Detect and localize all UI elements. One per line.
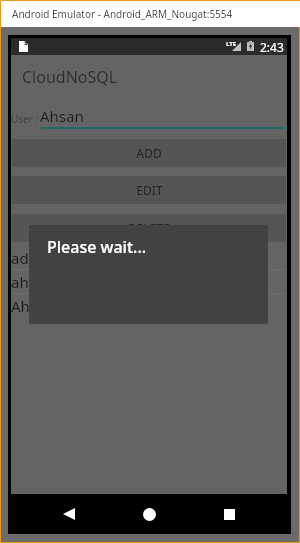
button[interactable]: EDIT — [12, 176, 286, 204]
button[interactable]: adam — [11, 246, 287, 269]
staticText: Please wait... — [47, 236, 147, 258]
staticText: DELETE — [128, 220, 170, 236]
button[interactable]: Back — [47, 494, 91, 534]
button[interactable]: DELETE — [12, 214, 286, 242]
button[interactable]: Recent apps — [207, 494, 251, 534]
button[interactable]: Home — [127, 494, 171, 534]
staticText: adam — [11, 248, 52, 268]
staticText: Ahsan — [11, 296, 55, 316]
staticText: CloudNoSQL — [22, 66, 118, 88]
staticText: User : — [11, 112, 39, 126]
button[interactable]: ADD — [12, 139, 286, 167]
staticText: EDIT — [136, 182, 163, 198]
staticText: Android Emulator - Android_ARM_Nougat:55… — [12, 7, 233, 21]
staticText: ahmed — [11, 272, 61, 292]
staticText: Ahsan — [40, 106, 84, 126]
staticText: 2:43 — [260, 39, 284, 55]
staticText: ADD — [136, 145, 162, 161]
button[interactable]: ahmed — [11, 270, 287, 293]
button[interactable]: Ahsan — [11, 294, 287, 317]
staticText: LTE — [226, 40, 237, 48]
